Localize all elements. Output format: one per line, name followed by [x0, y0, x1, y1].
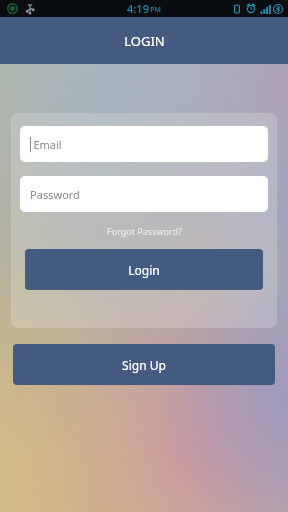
button[interactable]: Email [20, 126, 268, 162]
staticText: Password [30, 187, 80, 202]
button[interactable]: Forgot Password? [102, 223, 187, 239]
button[interactable]: Password [20, 176, 268, 212]
button[interactable]: Sign Up [13, 344, 275, 385]
staticText: Forgot Password? [107, 225, 182, 237]
staticText: 4:19 [127, 1, 149, 16]
staticText: Login [128, 262, 160, 278]
staticText: PM [150, 5, 161, 15]
staticText: Email [33, 137, 62, 152]
button[interactable]: Login [25, 249, 263, 290]
staticText: Sign Up [122, 357, 166, 373]
staticText: LOGIN [124, 32, 165, 50]
